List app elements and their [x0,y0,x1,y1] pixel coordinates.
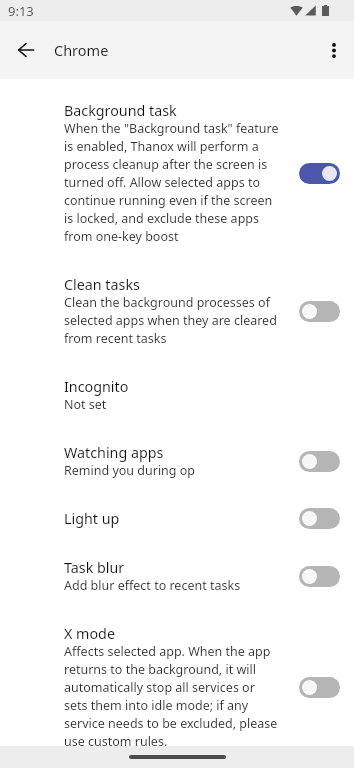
staticText: Remind you during op [64,462,196,479]
staticText: Task blur [64,558,125,577]
staticText: Not set [64,396,107,413]
button[interactable]: More options [314,30,354,70]
staticText: Clean tasks [64,275,140,294]
button[interactable]: Off [299,508,340,529]
staticText: Watching apps [64,443,164,462]
button[interactable]: Off [299,566,340,587]
button[interactable]: Navigate up [6,30,46,70]
button[interactable]: Background task [0,86,354,260]
staticText: X mode [64,624,115,643]
staticText: When the "Background task" feature is en… [64,120,280,245]
button[interactable]: Clean tasks [0,260,354,362]
button[interactable]: Off [299,677,340,698]
staticText: 9:13 [8,2,34,20]
button[interactable]: X mode [0,609,354,746]
button[interactable]: Watching apps [0,428,354,494]
staticText: Light up [64,509,120,528]
button[interactable]: Incognito [0,362,354,428]
button[interactable]: Task blur [0,543,354,609]
button[interactable]: Light up [0,494,354,543]
staticText: Background task [64,101,177,120]
staticText: Clean the background processes of select… [64,294,280,347]
button[interactable]: On [299,163,340,184]
staticText: Incognito [64,377,129,396]
staticText: Add blur effect to recent tasks [64,577,241,594]
button[interactable]: Off [299,451,340,472]
staticText: Chrome [54,40,109,60]
staticText: Affects selected app. When the app retur… [64,643,280,746]
button[interactable]: Off [299,301,340,322]
